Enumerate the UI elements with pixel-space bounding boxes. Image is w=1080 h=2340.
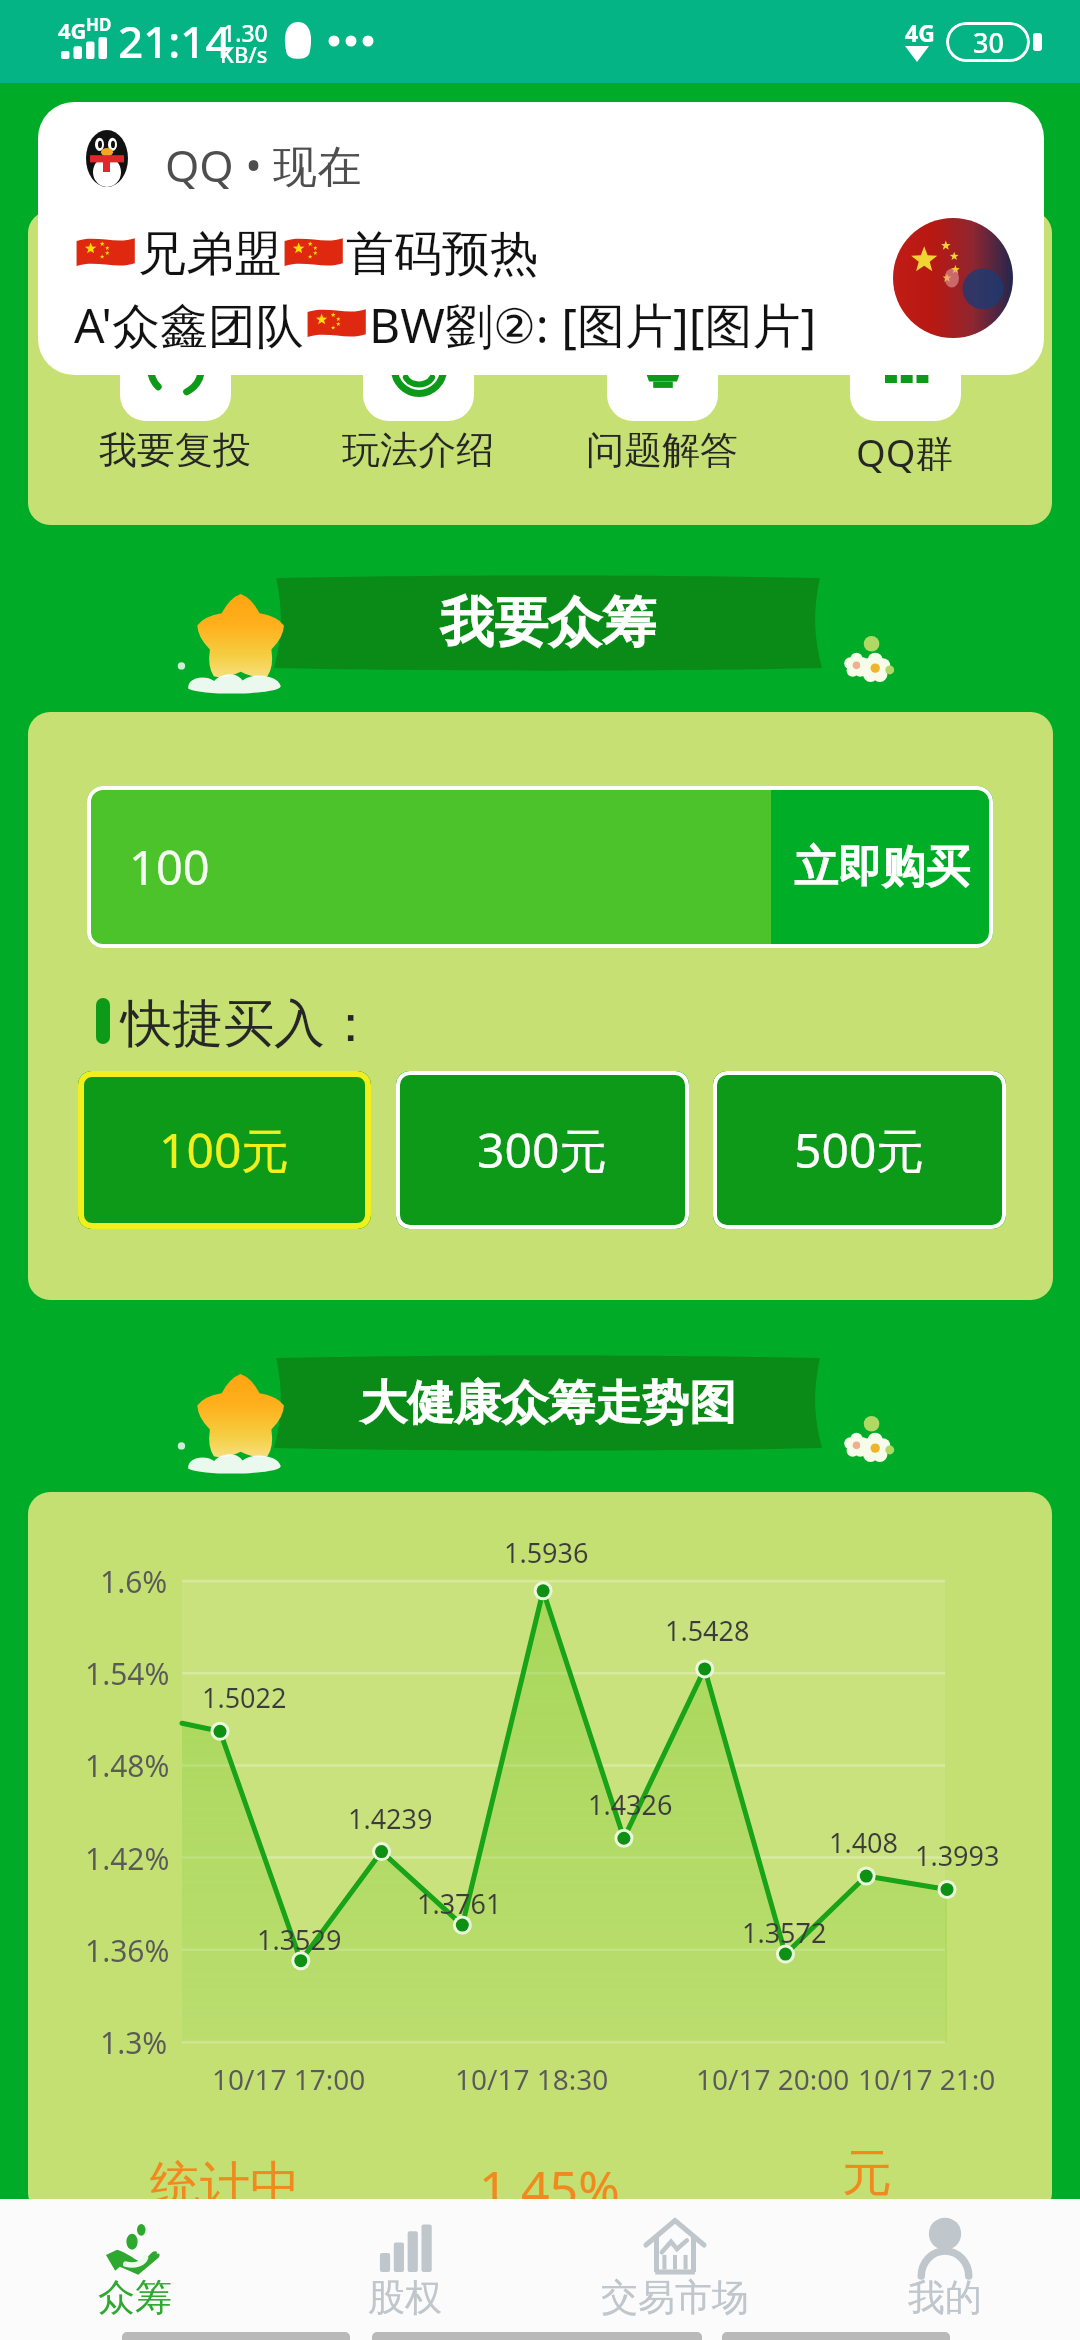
staticText: 1.30	[222, 17, 268, 48]
staticText: 4G	[905, 17, 935, 48]
staticText: 1.3572	[742, 1914, 827, 1951]
button[interactable]: 立即购买	[771, 786, 993, 948]
staticText: 1.3%	[100, 2022, 168, 2063]
staticText: 10/17 17:00	[212, 2060, 366, 2098]
staticText: 100元	[159, 1117, 290, 1183]
staticText: 我要众筹	[440, 589, 656, 657]
staticText: 兄弟盟	[138, 224, 282, 284]
button[interactable]: QQ • 现在	[38, 102, 1044, 375]
staticText: 10/17 20:00	[696, 2060, 850, 2098]
staticText: 1.4239	[348, 1800, 433, 1837]
staticText: 1.48%	[85, 1745, 170, 1786]
staticText: 首码预热	[346, 224, 538, 284]
staticText: A'众鑫团队	[74, 292, 305, 358]
button[interactable]: 股权	[270, 2199, 540, 2340]
staticText: 1.3761	[417, 1885, 502, 1922]
staticText: 统计中	[150, 2154, 300, 2215]
staticText: 10/17 18:30	[455, 2060, 609, 2098]
staticText: 问题解答	[586, 426, 738, 474]
staticText: 我的	[908, 2274, 982, 2321]
staticText: 1.408	[829, 1824, 899, 1861]
staticText: BW劉②: [图片][图片]	[369, 292, 817, 358]
staticText: QQ群	[856, 426, 954, 478]
staticText: 玩法介绍	[342, 426, 494, 474]
staticText: 众筹	[98, 2274, 172, 2321]
staticText: 4G	[58, 15, 87, 45]
button[interactable]: 300元	[396, 1071, 689, 1229]
staticText: 1.42%	[85, 1838, 170, 1879]
staticText: 1.3529	[257, 1921, 342, 1958]
staticText: 1.4326	[588, 1786, 673, 1823]
staticText: QQ • 现在	[165, 135, 362, 195]
staticText: 30	[973, 24, 1004, 61]
staticText: 股权	[368, 2274, 442, 2321]
staticText: 立即购买	[794, 840, 970, 895]
staticText: 21:14	[118, 11, 231, 71]
button[interactable]: QQ群	[785, 350, 1025, 478]
button[interactable]: 100元	[78, 1071, 371, 1229]
staticText: 300元	[477, 1117, 608, 1183]
staticText: 100	[129, 835, 210, 899]
staticText: 1.5428	[665, 1612, 750, 1649]
button[interactable]: 我要复投	[55, 350, 295, 474]
button[interactable]: 100	[87, 786, 771, 948]
button[interactable]: 500元	[713, 1071, 1006, 1229]
staticText: 500元	[794, 1117, 925, 1183]
staticText: 交易市场	[601, 2274, 749, 2321]
staticText: 10/17 21:0	[858, 2060, 996, 2098]
staticText: 1.5936	[504, 1534, 589, 1571]
button[interactable]: 交易市场	[540, 2199, 810, 2340]
staticText: 1.36%	[85, 1930, 170, 1971]
staticText: 1.5022	[202, 1679, 287, 1716]
staticText: KB/s	[220, 39, 268, 69]
staticText: 1.54%	[85, 1653, 170, 1694]
button[interactable]: 问题解答	[542, 350, 782, 474]
staticText: 1.6%	[100, 1561, 168, 1602]
staticText: 1.45%	[479, 2154, 620, 2215]
staticText: 元	[842, 2142, 892, 2205]
staticText: 大健康众筹走势图	[360, 1374, 736, 1433]
staticText: 我要复投	[99, 426, 251, 474]
button[interactable]: 我的	[810, 2199, 1080, 2340]
button[interactable]: 众筹	[0, 2199, 270, 2340]
staticText: 1.3993	[915, 1837, 1000, 1874]
button[interactable]: 玩法介绍	[298, 350, 538, 474]
staticText: HD	[86, 13, 112, 36]
staticText: 快捷买入：	[121, 992, 376, 1056]
